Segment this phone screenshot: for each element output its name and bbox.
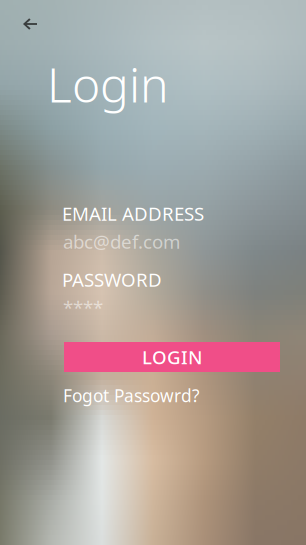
staticText: abc@def.com xyxy=(63,229,180,254)
button[interactable]: Fogot Passowrd? xyxy=(63,384,200,407)
button[interactable]: LOGIN xyxy=(64,342,280,372)
button[interactable]: Back xyxy=(10,4,50,44)
staticText: LOGIN xyxy=(142,345,202,369)
staticText: Fogot Passowrd? xyxy=(63,384,200,407)
staticText: **** xyxy=(63,295,103,320)
staticText: Login xyxy=(47,52,169,116)
staticText: EMAIL ADDRESS xyxy=(62,201,204,226)
staticText: PASSWORD xyxy=(62,267,162,292)
